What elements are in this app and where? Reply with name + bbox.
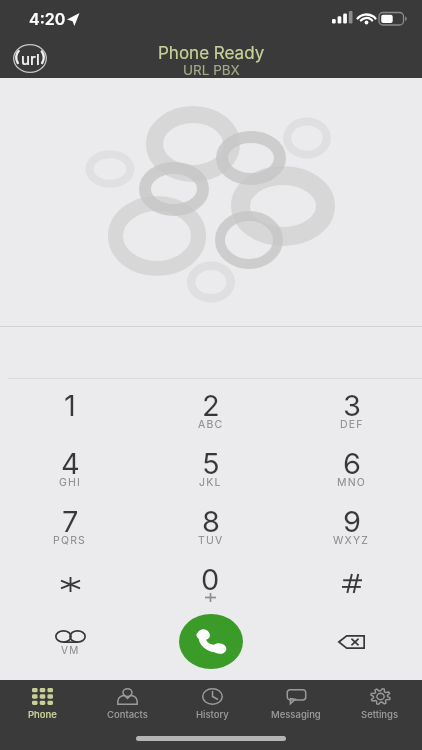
staticText: WXYZ: [333, 534, 370, 547]
staticText: PQRS: [53, 534, 87, 547]
button[interactable]: 7: [0, 495, 140, 553]
staticText: 5: [202, 446, 220, 481]
button[interactable]: [0, 553, 140, 611]
button[interactable]: 3: [281, 379, 422, 437]
staticText: 0: [201, 562, 220, 597]
staticText: Contacts: [107, 709, 148, 720]
button[interactable]: 0: [140, 553, 281, 611]
staticText: URL PBX: [183, 62, 240, 78]
button[interactable]: URL PBX logo: [13, 44, 47, 73]
button[interactable]: 6: [281, 437, 422, 495]
staticText: url: [21, 50, 40, 68]
button[interactable]: 5: [140, 437, 281, 495]
staticText: DEF: [340, 418, 364, 431]
button[interactable]: Backspace: [281, 611, 422, 679]
staticText: VM: [61, 644, 80, 656]
button[interactable]: 2: [140, 379, 281, 437]
button[interactable]: 1: [0, 379, 140, 437]
button[interactable]: 8: [140, 495, 281, 553]
button[interactable]: 9: [281, 495, 422, 553]
staticText: ABC: [198, 418, 224, 431]
button[interactable]: Messaging: [254, 688, 338, 734]
staticText: MNO: [337, 476, 367, 489]
button[interactable]: Voicemail: [0, 611, 140, 679]
button[interactable]: Settings: [338, 688, 422, 734]
staticText: 8: [202, 504, 220, 539]
staticText: 7: [62, 504, 79, 539]
staticText: Messaging: [271, 709, 321, 720]
button[interactable]: Contacts: [85, 688, 170, 734]
staticText: JKL: [199, 476, 222, 489]
button[interactable]: Call: [179, 614, 243, 669]
staticText: 6: [343, 446, 361, 481]
staticText: Settings: [361, 709, 399, 720]
staticText: History: [196, 709, 229, 720]
staticText: 4:20: [29, 9, 66, 28]
staticText: 9: [343, 504, 361, 539]
staticText: Phone Ready: [158, 43, 265, 64]
button[interactable]: [281, 553, 422, 611]
staticText: GHI: [59, 476, 82, 489]
staticText: 1: [64, 388, 76, 423]
staticText: 3: [343, 388, 361, 423]
staticText: TUV: [198, 534, 224, 547]
staticText: Phone: [28, 709, 57, 720]
button[interactable]: 4: [0, 437, 140, 495]
button[interactable]: Phone: [0, 688, 85, 734]
staticText: 2: [202, 388, 220, 423]
staticText: 4: [61, 446, 80, 481]
button[interactable]: History: [170, 688, 254, 734]
